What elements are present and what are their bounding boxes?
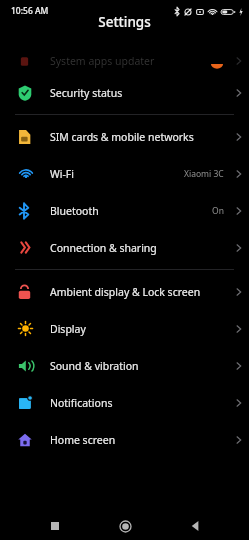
staticText: Connection & sharing — [50, 241, 229, 255]
button[interactable]: Back — [160, 512, 230, 540]
staticText: Xiaomi 3C — [184, 168, 224, 180]
staticText: Display — [50, 322, 229, 336]
staticText: Home screen — [50, 433, 229, 447]
button[interactable]: Connection & sharing — [0, 229, 249, 266]
staticText: Sound & vibration — [50, 359, 229, 373]
staticText: On — [212, 205, 224, 217]
staticText: SIM cards & mobile networks — [50, 130, 229, 144]
button[interactable]: Home — [90, 512, 160, 540]
staticText: Settings — [0, 13, 249, 31]
button[interactable]: Notifications — [0, 384, 249, 421]
button[interactable]: Wi-Fi — [0, 155, 249, 192]
staticText: Notifications — [50, 396, 229, 410]
button[interactable]: Recent apps — [20, 512, 90, 540]
button[interactable]: System apps updater — [0, 48, 249, 74]
button[interactable]: Ambient display & Lock screen — [0, 273, 249, 310]
button[interactable]: Security status — [0, 74, 249, 111]
staticText: Ambient display & Lock screen — [50, 285, 229, 299]
staticText: Security status — [50, 86, 229, 100]
button[interactable]: Bluetooth — [0, 192, 249, 229]
staticText: Wi-Fi — [50, 167, 184, 181]
button[interactable]: Display — [0, 310, 249, 347]
button[interactable]: Sound & vibration — [0, 347, 249, 384]
button[interactable]: SIM cards & mobile networks — [0, 118, 249, 155]
staticText: Bluetooth — [50, 204, 212, 218]
button[interactable]: Home screen — [0, 421, 249, 458]
staticText: 10:56 AM — [11, 5, 49, 17]
staticText: System apps updater — [50, 54, 210, 68]
